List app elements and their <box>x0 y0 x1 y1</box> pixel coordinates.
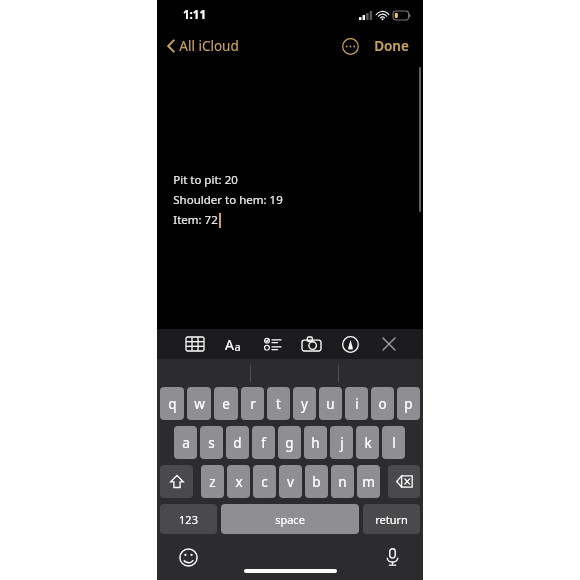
button[interactable]: space <box>221 504 359 534</box>
button[interactable]: More options <box>339 35 361 57</box>
staticText: Item: 72 <box>173 212 218 228</box>
button[interactable]: x <box>227 465 250 498</box>
staticText: m <box>362 473 375 491</box>
staticText: y <box>301 395 308 413</box>
button[interactable]: return <box>363 504 420 534</box>
button[interactable]: m <box>357 465 380 498</box>
button[interactable]: e <box>214 387 238 420</box>
staticText: Pit to pit: 20 <box>173 172 238 188</box>
staticText: w <box>194 395 205 413</box>
button[interactable]: q <box>160 387 184 420</box>
staticText: e <box>222 395 230 413</box>
staticText: Done <box>374 37 409 55</box>
button[interactable]: g <box>278 426 301 459</box>
staticText: o <box>378 395 387 413</box>
button[interactable]: l <box>382 426 405 459</box>
button[interactable]: i <box>345 387 368 420</box>
staticText: c <box>261 473 268 491</box>
button[interactable]: b <box>305 465 328 498</box>
button[interactable]: w <box>187 387 211 420</box>
staticText: k <box>364 434 372 452</box>
button[interactable]: o <box>371 387 394 420</box>
staticText: s <box>208 434 215 452</box>
staticText: return <box>375 512 408 527</box>
button[interactable]: d <box>226 426 249 459</box>
staticText: l <box>392 434 396 452</box>
button[interactable]: 123 <box>160 504 217 534</box>
button[interactable]: Camera <box>297 330 325 358</box>
button[interactable]: v <box>279 465 302 498</box>
staticText: i <box>355 395 359 413</box>
staticText: a <box>182 434 190 452</box>
button[interactable]: p <box>397 387 420 420</box>
staticText: f <box>261 434 266 452</box>
button[interactable]: k <box>356 426 379 459</box>
button[interactable]: r <box>241 387 264 420</box>
staticText: All iCloud <box>179 37 239 55</box>
button[interactable]: y <box>293 387 316 420</box>
staticText: h <box>311 434 320 452</box>
staticText: Shoulder to hem: 19 <box>173 192 283 208</box>
button[interactable]: t <box>267 387 290 420</box>
button[interactable]: j <box>330 426 353 459</box>
staticText: d <box>233 434 242 452</box>
button[interactable]: All iCloud <box>163 33 243 59</box>
button[interactable]: u <box>319 387 342 420</box>
button[interactable]: Close keyboard <box>375 330 403 358</box>
staticText: b <box>312 473 321 491</box>
button[interactable]: Checklist <box>258 330 286 358</box>
staticText: n <box>338 473 347 491</box>
staticText: x <box>235 473 243 491</box>
staticText: v <box>287 473 294 491</box>
staticText: j <box>340 434 344 452</box>
button[interactable]: h <box>304 426 327 459</box>
button[interactable]: Shift <box>160 465 193 498</box>
button[interactable]: z <box>201 465 224 498</box>
button[interactable]: Emoji <box>175 544 201 570</box>
staticText: A <box>225 335 234 354</box>
staticText: 1:11 <box>183 7 206 23</box>
staticText: q <box>168 395 177 413</box>
button[interactable]: c <box>253 465 276 498</box>
button[interactable]: s <box>200 426 223 459</box>
staticText: g <box>285 434 294 452</box>
staticText: u <box>326 395 335 413</box>
button[interactable]: f <box>252 426 275 459</box>
button[interactable]: Table <box>181 330 209 358</box>
button[interactable]: a <box>174 426 197 459</box>
staticText: 123 <box>179 512 198 527</box>
staticText: a <box>234 339 241 354</box>
staticText: t <box>276 395 281 413</box>
button[interactable]: Backspace <box>388 465 420 498</box>
button[interactable]: Done <box>372 34 411 58</box>
button[interactable]: n <box>331 465 354 498</box>
staticText: space <box>275 512 305 527</box>
staticText: z <box>209 473 216 491</box>
staticText: r <box>250 395 256 413</box>
button[interactable]: Text format <box>219 330 247 358</box>
staticText: p <box>404 395 413 413</box>
button[interactable]: Markup <box>336 330 364 358</box>
button[interactable]: Dictation <box>379 544 405 570</box>
